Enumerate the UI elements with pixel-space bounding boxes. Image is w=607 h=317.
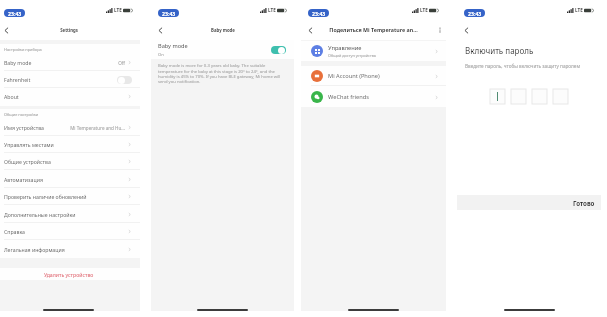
button[interactable]: Fahrenheit bbox=[0, 71, 140, 88]
button[interactable]: About bbox=[0, 88, 140, 105]
staticText: 23:43 bbox=[8, 10, 22, 17]
staticText: Готово bbox=[573, 199, 595, 207]
staticText: Mi Account (Phone) bbox=[328, 72, 380, 80]
staticText: WeChat friends bbox=[328, 93, 369, 101]
staticText: Включить пароль bbox=[465, 45, 534, 56]
button[interactable]: Удалить устройство bbox=[0, 268, 140, 280]
staticText: Автоматизация bbox=[4, 176, 43, 183]
button[interactable]: Back bbox=[153, 23, 167, 37]
staticText: 23:43 bbox=[468, 10, 482, 17]
staticText: Baby mode bbox=[4, 59, 32, 66]
staticText: About bbox=[4, 93, 19, 100]
button[interactable]: Легальная информация bbox=[0, 241, 140, 258]
staticText: Настройки прибора bbox=[4, 47, 42, 52]
button[interactable]: Digit 2 bbox=[511, 89, 526, 104]
staticText: Управление bbox=[328, 44, 362, 52]
staticText: On bbox=[158, 52, 164, 58]
button[interactable]: Toggle bbox=[117, 76, 132, 84]
button[interactable]: Готово bbox=[457, 195, 601, 210]
staticText: Общие устройства bbox=[4, 158, 51, 165]
staticText: Дополнительные настройки bbox=[4, 211, 76, 218]
staticText: Поделиться Mi Temperature an... bbox=[329, 26, 418, 33]
staticText: Удалить устройство bbox=[44, 271, 94, 278]
button[interactable]: Проверить наличие обновлений bbox=[0, 188, 140, 205]
button[interactable]: Back bbox=[303, 23, 317, 37]
staticText: Baby mode bbox=[211, 27, 235, 33]
staticText: Общие настройки bbox=[4, 112, 39, 117]
staticText: Общий доступ устройства bbox=[328, 53, 376, 58]
button[interactable]: WeChat friends bbox=[301, 87, 446, 107]
staticText: Baby mode is more for 0-3 years old baby… bbox=[158, 63, 286, 84]
button[interactable]: Back bbox=[0, 23, 13, 37]
staticText: 23:43 bbox=[162, 10, 176, 17]
button[interactable]: Digit 1 bbox=[490, 89, 505, 104]
staticText: LTE bbox=[114, 7, 122, 13]
staticText: LTE bbox=[575, 7, 583, 13]
button[interactable]: Управлять местами bbox=[0, 136, 140, 153]
button[interactable]: Baby mode bbox=[0, 54, 140, 71]
button[interactable]: Имя устройства bbox=[0, 119, 140, 136]
button[interactable]: Back bbox=[459, 23, 473, 37]
staticText: Легальная информация bbox=[4, 246, 65, 253]
button[interactable]: Digit 4 bbox=[553, 89, 568, 104]
button[interactable]: More options bbox=[433, 23, 446, 36]
button[interactable]: Digit 3 bbox=[532, 89, 547, 104]
button[interactable]: Mi Account (Phone) bbox=[301, 66, 446, 86]
button[interactable]: Справка bbox=[0, 223, 140, 240]
staticText: 23:43 bbox=[312, 10, 326, 17]
button[interactable]: Дополнительные настройки bbox=[0, 206, 140, 223]
staticText: LTE bbox=[420, 7, 428, 13]
staticText: Baby mode bbox=[158, 42, 188, 50]
staticText: Введите пароль, чтобы включить защиту па… bbox=[465, 63, 581, 69]
staticText: Settings bbox=[60, 27, 78, 33]
button[interactable]: Baby mode bbox=[151, 40, 294, 59]
staticText: LTE bbox=[268, 7, 276, 13]
staticText: Управлять местами bbox=[4, 141, 54, 148]
button[interactable]: Общие устройства bbox=[0, 153, 140, 170]
staticText: Справка bbox=[4, 228, 25, 235]
button[interactable]: Автоматизация bbox=[0, 171, 140, 188]
staticText: Имя устройства bbox=[4, 124, 44, 131]
staticText: Проверить наличие обновлений bbox=[4, 193, 87, 200]
button[interactable]: Toggle bbox=[271, 46, 286, 54]
button[interactable]: Управление bbox=[301, 41, 446, 61]
staticText: Off bbox=[113, 60, 125, 66]
staticText: Mi Temperature and Humid... bbox=[68, 125, 125, 131]
staticText: Fahrenheit bbox=[4, 76, 31, 83]
